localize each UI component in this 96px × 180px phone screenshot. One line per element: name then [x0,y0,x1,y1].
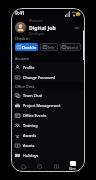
staticText: Check In [22,45,36,49]
button[interactable]: Training [11,120,85,130]
staticText: Digital Job [29,24,56,31]
staticText: 9:41 [15,10,25,17]
button[interactable]: Office Events [11,110,85,120]
button[interactable]: Awards [11,130,85,140]
button[interactable]: Explore [32,160,47,172]
button[interactable]: Holidays [11,150,85,160]
staticText: Holidays [23,153,39,158]
button[interactable]: Assets [11,140,85,150]
button[interactable]: Project Management [11,100,85,110]
button[interactable]: Team Chat [11,90,85,100]
button[interactable]: Profile [11,62,85,72]
button[interactable]: Welcome [11,19,85,36]
staticText: Account [15,56,29,61]
staticText: Office Desk [15,84,35,89]
staticText: Office Events [23,113,47,118]
button[interactable]: Check In [15,43,38,51]
staticText: Project Management [23,103,61,108]
button[interactable]: Tasks [49,160,64,172]
staticText: More [69,167,76,171]
staticText: Welcome [29,19,43,23]
staticText: Attendance [67,45,79,49]
staticText: Assets [23,143,35,148]
button[interactable]: Home [16,160,31,172]
staticText: Developer [29,32,45,36]
button[interactable]: More [65,160,80,172]
staticText: Awards [23,133,37,138]
staticText: Info [48,45,55,49]
button[interactable]: More options [73,24,81,32]
staticText: Training [23,123,38,128]
button[interactable]: Change Password [11,72,85,82]
staticText: Profile [23,65,35,70]
button[interactable]: Attendance [60,43,81,51]
button[interactable]: Info [40,43,58,51]
staticText: Team Chat [23,93,42,98]
staticText: Check in [15,36,30,41]
staticText: Change Password [23,75,55,80]
